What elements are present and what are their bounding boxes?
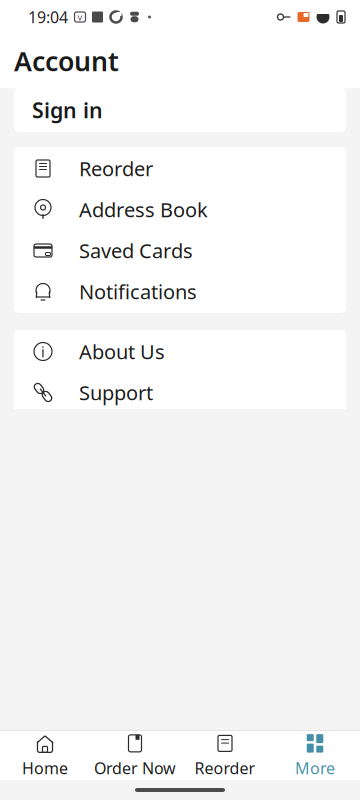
staticText: Address Book [79, 196, 208, 223]
staticText: Sign in [32, 96, 103, 124]
button[interactable]: Sign in [14, 88, 346, 132]
button[interactable]: Order Now [90, 731, 180, 780]
staticText: Reorder [79, 155, 153, 182]
staticText: Saved Cards [79, 237, 193, 264]
staticText: More [295, 757, 335, 779]
button[interactable]: Notifications [14, 271, 346, 312]
button[interactable]: Reorder [180, 731, 270, 780]
button[interactable]: Reorder [14, 148, 346, 189]
button[interactable]: Support [14, 372, 346, 413]
staticText: Support [79, 379, 153, 406]
button[interactable]: i [14, 331, 346, 372]
staticText: Order Now [94, 757, 176, 779]
staticText: Home [22, 757, 68, 779]
staticText: 19:04 [28, 6, 68, 28]
staticText: Notifications [79, 278, 197, 305]
staticText: v [77, 11, 82, 23]
button[interactable]: Saved Cards [14, 230, 346, 271]
staticText: Account [14, 43, 119, 79]
button[interactable]: More [270, 731, 360, 780]
staticText: About Us [79, 338, 165, 365]
button[interactable]: Home [0, 731, 90, 780]
button[interactable]: Address Book [14, 189, 346, 230]
staticText: Reorder [194, 757, 255, 779]
staticText: i [41, 342, 45, 361]
